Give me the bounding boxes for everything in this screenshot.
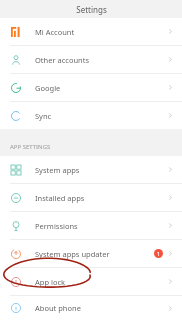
button[interactable]: Permissions <box>0 212 182 240</box>
staticText: App lock <box>35 277 66 287</box>
staticText: Sync <box>35 111 52 121</box>
staticText: Permissions <box>35 221 78 231</box>
button[interactable]: Mi Account <box>0 18 182 46</box>
button[interactable]: About phone <box>0 296 182 320</box>
button[interactable]: System apps updater <box>0 240 182 268</box>
staticText: About phone <box>35 303 81 313</box>
button[interactable]: Other accounts <box>0 46 182 74</box>
staticText: Mi Account <box>35 27 75 37</box>
staticText: System apps <box>35 165 80 175</box>
staticText: System apps updater <box>35 249 110 259</box>
button[interactable]: Google <box>0 74 182 102</box>
staticText: Other accounts <box>35 55 89 65</box>
button[interactable]: App lock <box>0 268 182 296</box>
staticText: APP SETTINGS <box>10 143 51 151</box>
staticText: Settings <box>76 4 107 15</box>
button[interactable]: Sync <box>0 102 182 129</box>
staticText: Google <box>35 83 61 93</box>
staticText: Installed apps <box>35 193 85 203</box>
staticText: 1 <box>157 250 161 257</box>
button[interactable]: System apps <box>0 156 182 184</box>
button[interactable]: Installed apps <box>0 184 182 212</box>
